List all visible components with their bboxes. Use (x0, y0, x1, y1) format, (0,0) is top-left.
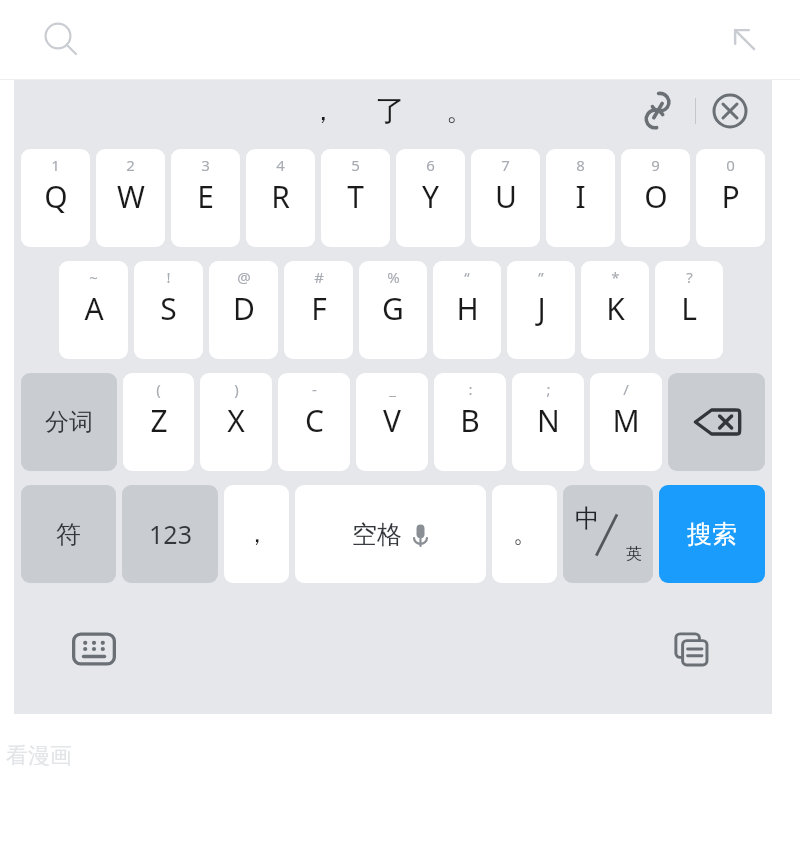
button[interactable]: ) (200, 373, 272, 471)
button[interactable]: “ (433, 261, 501, 359)
staticText: 英 (626, 544, 642, 564)
staticText: B (460, 400, 480, 441)
button[interactable]: Backspace (668, 373, 765, 471)
staticText: % (387, 267, 400, 287)
staticText: ， (245, 519, 269, 549)
staticText: @ (237, 267, 251, 287)
staticText: 8 (576, 155, 585, 175)
staticText: P (721, 176, 740, 217)
button[interactable]: 2 (96, 149, 165, 247)
staticText: ， (310, 95, 336, 128)
button[interactable]: % (359, 261, 427, 359)
button[interactable]: 7 (471, 149, 540, 247)
staticText: M (612, 400, 640, 441)
button[interactable]: Search (42, 20, 82, 60)
staticText: 9 (651, 155, 660, 175)
staticText: N (537, 400, 560, 441)
button[interactable]: 4 (246, 149, 315, 247)
staticText: ) (234, 379, 239, 399)
staticText: 了 (375, 92, 405, 130)
button[interactable]: Switch keyboard layout (72, 627, 116, 671)
staticText: ~ (89, 267, 98, 287)
staticText: A (84, 288, 104, 329)
staticText: ; (546, 379, 551, 399)
button[interactable]: 分词 (21, 373, 117, 471)
staticText: - (312, 379, 317, 399)
button[interactable]: : (434, 373, 506, 471)
button[interactable]: Collapse keyboard (726, 21, 764, 59)
staticText: H (456, 288, 479, 329)
staticText: S (160, 288, 177, 329)
button[interactable]: ， (294, 80, 352, 142)
staticText: 0 (726, 155, 735, 175)
staticText: W (117, 176, 145, 217)
button[interactable]: 空格 (295, 485, 486, 583)
button[interactable]: ? (655, 261, 723, 359)
staticText: 分词 (45, 407, 93, 437)
button[interactable]: # (284, 261, 353, 359)
button[interactable]: 搜索 (659, 485, 765, 583)
button[interactable]: @ (209, 261, 278, 359)
staticText: I (575, 176, 586, 217)
staticText: # (314, 267, 324, 287)
button[interactable]: 。 (492, 485, 557, 583)
staticText: Y (422, 176, 439, 217)
staticText: U (495, 176, 517, 217)
button[interactable]: Clipboard (670, 628, 712, 670)
staticText: 中 (575, 503, 600, 534)
staticText: * (611, 267, 620, 287)
button[interactable]: 123 (122, 485, 218, 583)
staticText: 搜索 (687, 519, 737, 550)
button[interactable]: 。 (428, 80, 490, 142)
button[interactable]: 8 (546, 149, 615, 247)
button[interactable]: ， (224, 485, 289, 583)
button[interactable]: 5 (321, 149, 390, 247)
button[interactable]: 0 (696, 149, 765, 247)
staticText: D (233, 288, 255, 329)
staticText: C (305, 400, 324, 441)
button[interactable]: / (590, 373, 662, 471)
staticText: 符 (56, 519, 81, 550)
staticText: V (383, 400, 401, 441)
button[interactable]: Associate (637, 90, 679, 132)
staticText: 看漫画 (6, 742, 72, 770)
staticText: 7 (501, 155, 510, 175)
button[interactable]: 1 (21, 149, 90, 247)
staticText: J (537, 288, 546, 329)
staticText: F (311, 288, 327, 329)
staticText: G (382, 288, 404, 329)
button[interactable]: Chinese English toggle (563, 485, 653, 583)
staticText: 123 (149, 517, 192, 551)
button[interactable]: * (581, 261, 649, 359)
staticText: ” (538, 267, 544, 287)
button[interactable]: 了 (352, 80, 428, 142)
button[interactable]: Close (710, 91, 750, 131)
button[interactable]: ~ (59, 261, 128, 359)
staticText: _ (389, 379, 396, 399)
staticText: 2 (126, 155, 135, 175)
staticText: ! (166, 267, 171, 287)
staticText: 6 (426, 155, 435, 175)
staticText: 。 (513, 519, 537, 549)
button[interactable]: _ (356, 373, 428, 471)
staticText: E (197, 176, 214, 217)
staticText: 3 (201, 155, 210, 175)
staticText: X (227, 400, 245, 441)
staticText: ? (686, 267, 693, 287)
staticText: 5 (351, 155, 360, 175)
staticText: 空格 (352, 519, 402, 550)
staticText: 1 (51, 155, 60, 175)
staticText: Z (150, 400, 168, 441)
button[interactable]: 6 (396, 149, 465, 247)
button[interactable]: ! (134, 261, 203, 359)
staticText: : (468, 379, 473, 399)
button[interactable]: 3 (171, 149, 240, 247)
button[interactable]: ; (512, 373, 584, 471)
button[interactable]: 9 (621, 149, 690, 247)
button[interactable]: - (278, 373, 350, 471)
staticText: “ (464, 267, 470, 287)
button[interactable]: 符 (21, 485, 116, 583)
button[interactable]: ” (507, 261, 575, 359)
staticText: O (644, 176, 668, 217)
button[interactable]: ( (123, 373, 194, 471)
